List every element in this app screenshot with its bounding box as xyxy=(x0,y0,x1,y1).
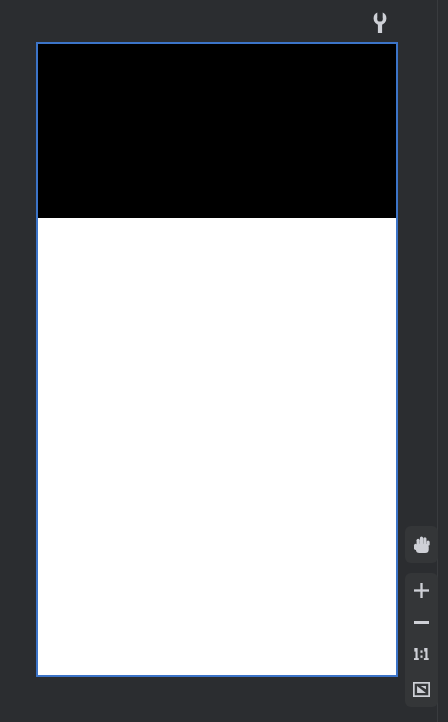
button[interactable]: Pan screen xyxy=(405,526,438,563)
button[interactable]: Zoom to fit screen xyxy=(405,671,438,707)
button[interactable]: Zoom to actual size xyxy=(405,637,438,671)
button[interactable] xyxy=(36,42,398,677)
button[interactable]: Zoom in xyxy=(405,573,438,607)
button[interactable]: Design tools settings xyxy=(367,8,393,38)
button[interactable]: Zoom out xyxy=(405,607,438,637)
